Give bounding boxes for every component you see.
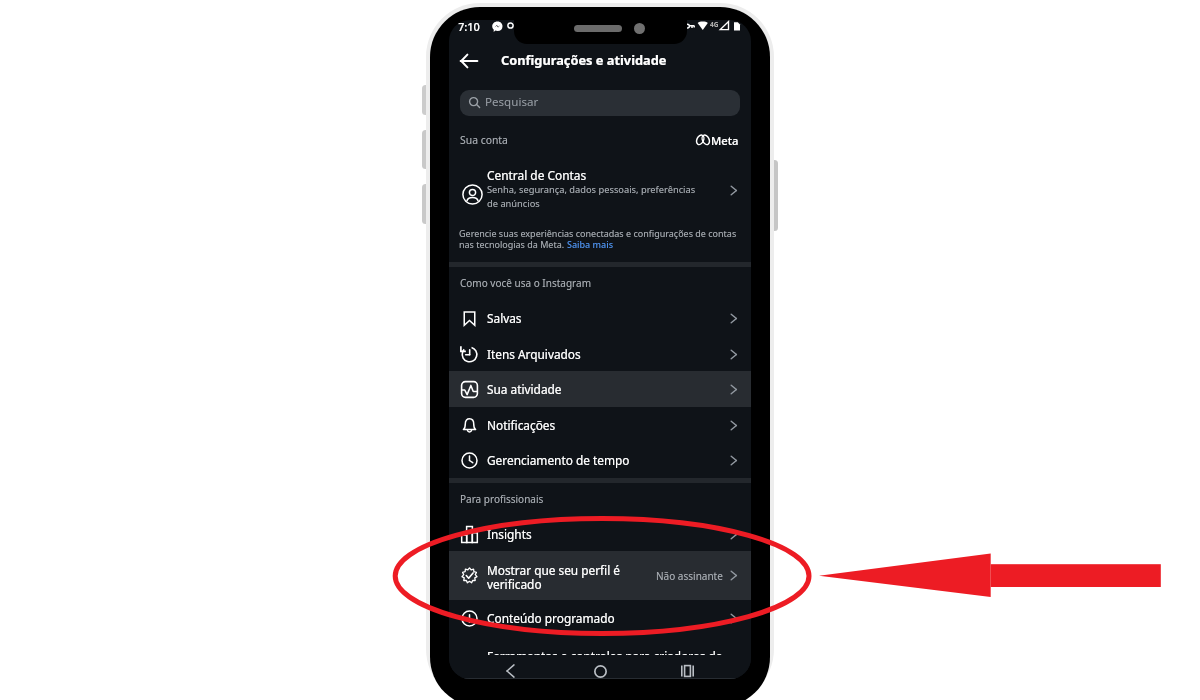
staticText: Senha, segurança, dados pessoais, prefer…: [487, 183, 696, 209]
button[interactable]: Itens Arquivados: [449, 336, 751, 372]
button[interactable]: Ferramentas e controles para criadores d…: [449, 635, 751, 656]
staticText: 7:10: [458, 20, 480, 34]
button[interactable]: Salvas: [449, 300, 751, 336]
staticText: Configurações e atividade: [501, 51, 667, 68]
staticText: Conteúdo programado: [487, 610, 615, 626]
staticText: Gerenciamento de tempo: [487, 452, 630, 468]
staticText: Sua atividade: [487, 381, 562, 397]
button[interactable]: Voltar: [500, 661, 520, 679]
staticText: Para profissionais: [460, 492, 544, 506]
button[interactable]: Sua atividade: [449, 371, 751, 407]
staticText: Ferramentas e controles para criadores d…: [487, 648, 723, 656]
button[interactable]: Pesquisar: [460, 90, 740, 116]
staticText: Salvas: [487, 310, 522, 326]
button[interactable]: Recentes: [677, 661, 697, 679]
staticText: Central de Contas: [487, 167, 587, 183]
staticText: Meta: [711, 133, 739, 148]
button[interactable]: Notificações: [449, 407, 751, 443]
button[interactable]: Insights: [449, 516, 751, 552]
staticText: Não assinante: [656, 569, 723, 583]
staticText: nas tecnologias da Meta.: [459, 238, 567, 250]
button[interactable]: Saiba mais: [567, 238, 614, 250]
button[interactable]: Gerenciamento de tempo: [449, 442, 751, 478]
staticText: 4G: [710, 20, 719, 29]
staticText: Sua conta: [460, 133, 508, 147]
button[interactable]: Conteúdo programado: [449, 600, 751, 636]
staticText: Notificações: [487, 417, 556, 433]
staticText: Mostrar que seu perfil é verificado: [487, 562, 621, 593]
button[interactable]: Início: [590, 661, 610, 679]
staticText: Insights: [487, 526, 532, 542]
button[interactable]: Central de Contas: [449, 172, 751, 216]
staticText: Gerencie suas experiências conectadas e …: [459, 227, 737, 239]
staticText: Itens Arquivados: [487, 346, 581, 362]
button[interactable]: Mostrar que seu perfil é verificado: [449, 551, 751, 600]
staticText: Pesquisar: [485, 94, 539, 110]
staticText: Como você usa o Instagram: [460, 276, 591, 290]
button[interactable]: Voltar: [454, 46, 484, 76]
